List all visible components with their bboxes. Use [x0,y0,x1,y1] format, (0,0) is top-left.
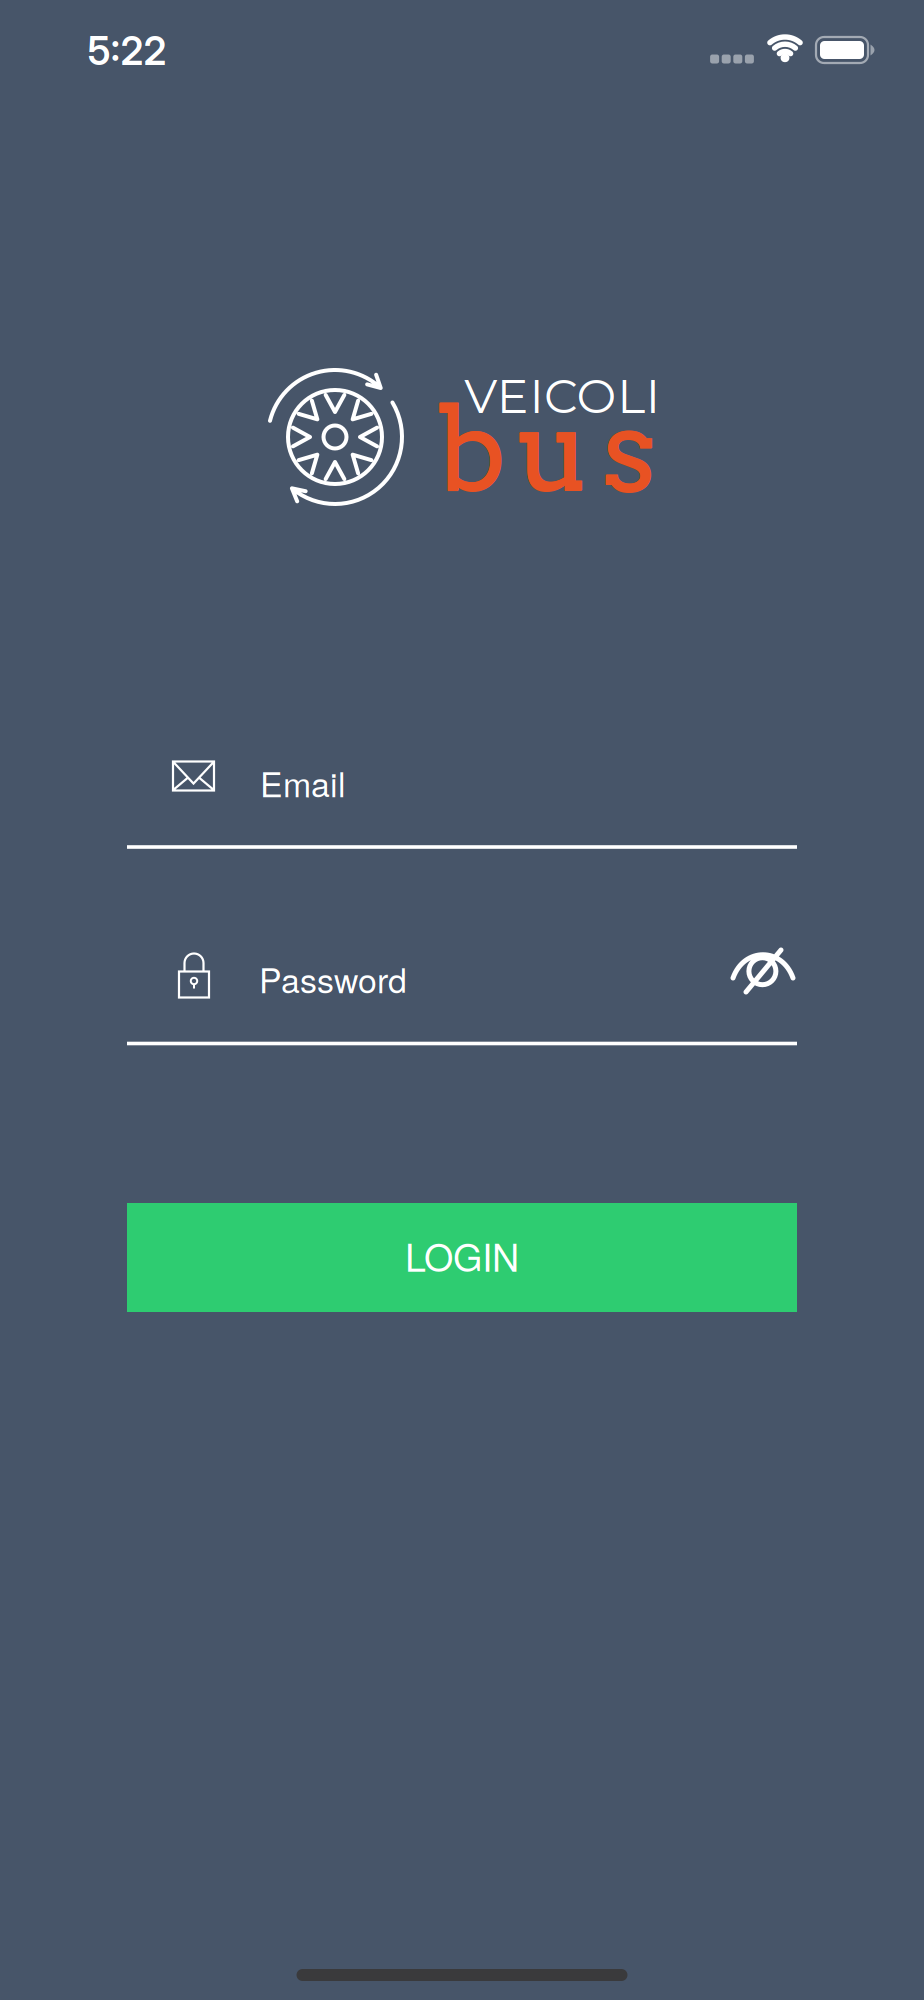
staticText: Password [259,954,407,1003]
staticText: Email [260,758,346,807]
button[interactable]: Password [127,942,700,1048]
button[interactable]: Email [127,746,797,852]
staticText: bus [436,381,656,519]
staticText: VEICOLI [464,367,660,425]
button[interactable]: Show password [700,932,824,1038]
staticText: LOGIN [405,1228,519,1282]
staticText: 5:22 [87,28,166,74]
button[interactable]: LOGIN [127,1203,797,1312]
staticText: bus [437,381,657,518]
staticText: bus [436,381,656,518]
